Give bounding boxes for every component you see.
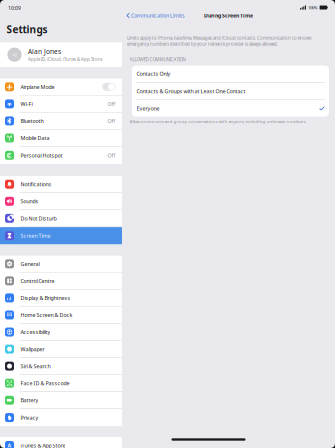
- staticText: iTunes & App Store: [20, 442, 65, 448]
- staticText: Sounds: [20, 198, 38, 205]
- button[interactable]: Personal Hotspot: [0, 147, 122, 164]
- staticText: Home Screen & Dock: [20, 311, 72, 319]
- button[interactable]: Siri & Search: [0, 358, 122, 375]
- button[interactable]: Communication Limits: [122, 10, 188, 20]
- staticText: General: [20, 260, 39, 267]
- staticText: Face ID & Passcode: [20, 379, 69, 387]
- button[interactable]: Wi-Fi: [0, 96, 122, 113]
- button[interactable]: Wallpaper: [0, 341, 122, 358]
- staticText: Alan Jones: [28, 47, 61, 56]
- staticText: Contacts & Groups with at Least One Cont…: [136, 87, 245, 95]
- staticText: Display & Brightness: [20, 294, 70, 302]
- button[interactable]: Contacts Only: [132, 65, 329, 82]
- button[interactable]: iTunes & App Store: [0, 437, 122, 448]
- staticText: Accessibility: [20, 328, 50, 336]
- staticText: Apple ID, iCloud, iTunes & App Store: [28, 56, 102, 62]
- button[interactable]: Airplane Mode: [0, 79, 122, 96]
- staticText: Off: [107, 100, 115, 107]
- staticText: Airplane Mode: [20, 83, 54, 90]
- staticText: Siri & Search: [20, 362, 50, 370]
- staticText: During Screen Time: [204, 12, 253, 19]
- staticText: Privacy: [20, 414, 38, 421]
- staticText: AJ: [12, 51, 16, 58]
- staticText: Battery: [20, 397, 38, 404]
- button[interactable]: General: [0, 256, 122, 273]
- staticText: 100%: [308, 5, 318, 10]
- staticText: Off: [107, 152, 115, 159]
- button[interactable]: Everyone: [132, 100, 329, 117]
- staticText: Screen Time: [20, 232, 50, 239]
- staticText: Off: [107, 117, 115, 125]
- staticText: Contacts Only: [136, 70, 170, 77]
- button[interactable]: Privacy: [0, 409, 122, 426]
- button[interactable]: Control Centre: [0, 273, 122, 290]
- staticText: Mobile Data: [20, 134, 49, 142]
- button[interactable]: Bluetooth: [0, 113, 122, 130]
- staticText: Everyone: [136, 105, 159, 112]
- button[interactable]: Face ID & Passcode: [0, 375, 122, 392]
- staticText: Personal Hotspot: [20, 152, 62, 159]
- staticText: Notifications: [20, 181, 51, 188]
- staticText: Communication Limits: [131, 12, 185, 19]
- button[interactable]: AJ: [0, 42, 122, 67]
- staticText: Settings: [6, 22, 47, 36]
- button[interactable]: Contacts & Groups with at Least One Cont…: [132, 83, 329, 99]
- button[interactable]: Do Not Disturb: [0, 210, 122, 227]
- button[interactable]: Notifications: [0, 176, 122, 193]
- staticText: Limits apply to Phone, FaceTime, Message…: [127, 35, 312, 47]
- button[interactable]: Accessibility: [0, 324, 122, 341]
- staticText: Do Not Disturb: [20, 215, 56, 222]
- staticText: Bluetooth: [20, 117, 43, 125]
- staticText: 10:09: [8, 4, 21, 11]
- button[interactable]: Sounds: [0, 193, 122, 210]
- staticText: Wi-Fi: [20, 100, 32, 107]
- button[interactable]: Display & Brightness: [0, 290, 122, 307]
- button[interactable]: Battery: [0, 392, 122, 409]
- staticText: ALLOWED COMMUNICATION: [129, 56, 185, 62]
- staticText: Wallpaper: [20, 345, 44, 353]
- button[interactable]: Mobile Data: [0, 130, 122, 147]
- button[interactable]: Home Screen & Dock: [0, 307, 122, 324]
- staticText: Allow one-to-one and group conversations…: [129, 118, 306, 124]
- button[interactable]: Screen Time: [0, 227, 122, 244]
- staticText: Control Centre: [20, 277, 54, 284]
